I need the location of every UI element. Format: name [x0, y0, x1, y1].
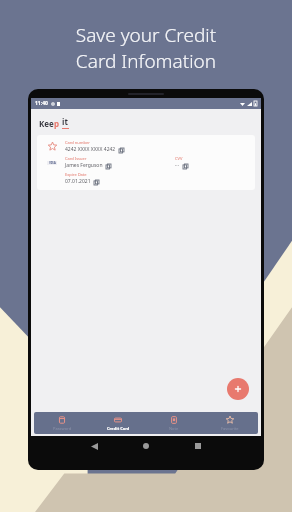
staticText: James Ferguson [65, 162, 103, 169]
staticText: 11:40 [35, 100, 48, 107]
button[interactable]: Credit Card [90, 412, 146, 434]
button[interactable]: Favourite [202, 412, 258, 434]
button[interactable]: Copy Card number [118, 147, 124, 153]
button[interactable]: Copy Expire Date [93, 179, 99, 185]
staticText: Favourite [221, 426, 239, 431]
staticText: Expire Date [65, 172, 87, 177]
staticText: Save your Credit Card Infomation [0, 22, 292, 73]
staticText: CVV [175, 156, 183, 161]
staticText: it [62, 116, 68, 127]
button[interactable]: Copy Card Issuer [105, 163, 111, 169]
button[interactable]: Add credit card [227, 378, 249, 400]
staticText: Credit Card [107, 426, 130, 431]
button[interactable]: Copy CVV [182, 163, 188, 169]
staticText: Card Issuer [65, 156, 87, 161]
button[interactable]: VISA [37, 135, 255, 190]
staticText: Kee [39, 118, 54, 129]
staticText: Password [53, 426, 72, 431]
staticText: 07.01.2021 [65, 178, 91, 185]
staticText: Note [169, 426, 179, 431]
staticText: 4242 XXXX XXXX 4242 [65, 146, 116, 153]
staticText: ··· [175, 162, 180, 169]
staticText: Card number [65, 140, 90, 145]
staticText: p [54, 118, 60, 129]
staticText: VISA [49, 161, 56, 165]
button[interactable]: Password [34, 412, 90, 434]
button[interactable]: Note [146, 412, 202, 434]
